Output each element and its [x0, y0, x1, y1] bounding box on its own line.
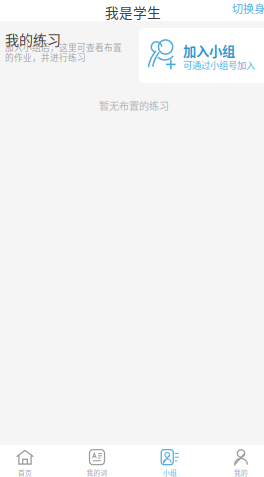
- staticText: 我的练习: [5, 29, 61, 49]
- staticText: 小组: [163, 468, 177, 477]
- staticText: 可通过小组号加入: [183, 58, 255, 71]
- staticText: 的作业，并进行练习: [5, 51, 86, 63]
- button[interactable]: 首页: [3, 449, 47, 477]
- staticText: 切换身份: [232, 0, 264, 16]
- staticText: 我的: [234, 468, 248, 477]
- staticText: 我的词: [86, 468, 107, 477]
- button[interactable]: 我的: [219, 449, 263, 477]
- staticText: 加入小组后，这里可查看布置: [5, 41, 122, 53]
- staticText: 首页: [18, 468, 32, 477]
- button[interactable]: 小组: [148, 449, 192, 477]
- button[interactable]: 切换身份: [232, 0, 264, 19]
- staticText: 暂无布置的练习: [99, 98, 169, 113]
- staticText: 加入小组: [183, 41, 235, 60]
- button[interactable]: 我的词: [75, 449, 119, 477]
- staticText: 我是学生: [105, 2, 161, 22]
- button[interactable]: 加入小组: [139, 28, 264, 83]
